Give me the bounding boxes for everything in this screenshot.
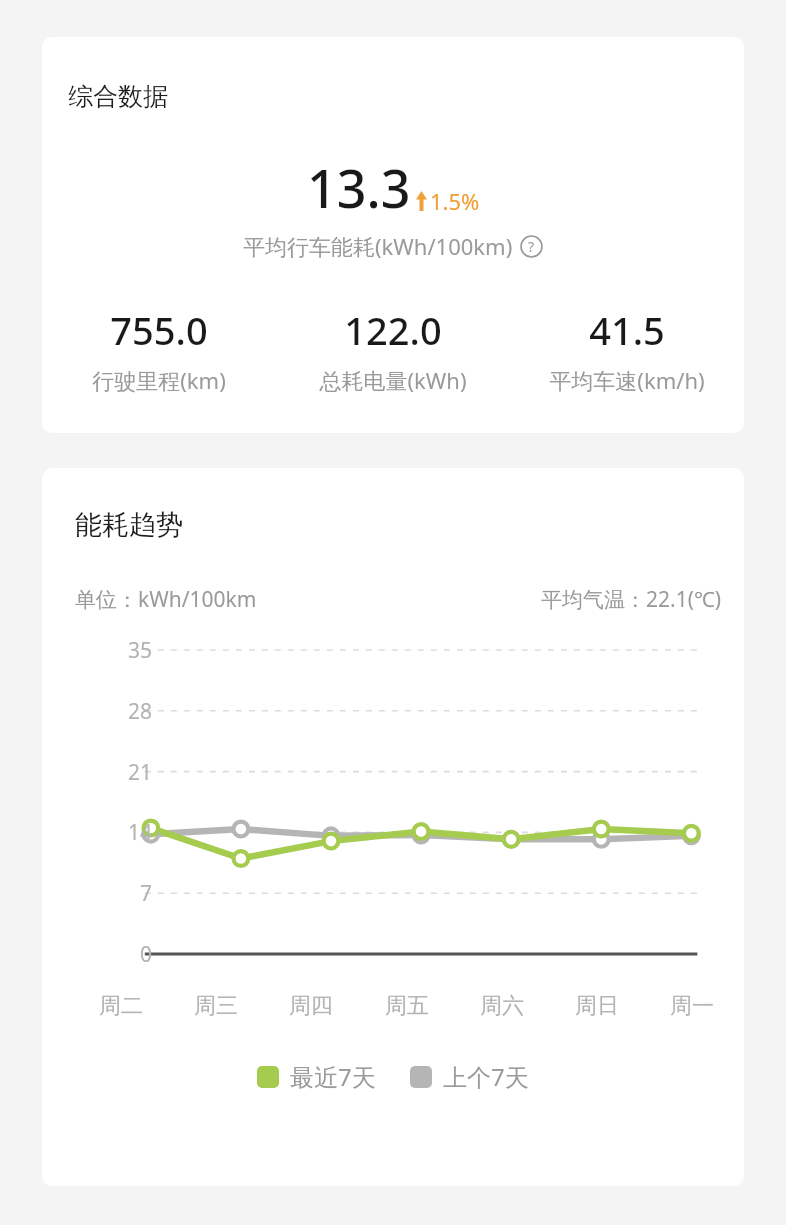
button[interactable]: 上个7天 xyxy=(410,1060,529,1093)
staticText: 总耗电量(kWh) xyxy=(319,365,467,395)
staticText: 1.5% xyxy=(430,186,480,216)
other: Help xyxy=(520,235,543,258)
staticText: 周五 xyxy=(385,992,429,1020)
button[interactable]: 122.0 xyxy=(276,304,510,395)
staticText: 周六 xyxy=(480,992,524,1020)
staticText: 最近7天 xyxy=(290,1060,376,1093)
staticText: 能耗趋势 xyxy=(75,508,183,542)
button[interactable]: 755.0 xyxy=(42,304,276,395)
staticText: 平均气温：22.1(℃) xyxy=(541,585,722,614)
staticText: 周四 xyxy=(289,992,333,1020)
staticText: ? xyxy=(528,237,535,256)
staticText: 行驶里程(km) xyxy=(92,365,226,395)
staticText: 周三 xyxy=(194,992,238,1020)
staticText: 14 xyxy=(127,818,152,847)
staticText: 单位：kWh/100km xyxy=(75,585,257,614)
staticText: 平均车速(km/h) xyxy=(549,365,705,395)
staticText: 综合数据 xyxy=(68,81,168,112)
button[interactable]: 平均行车能耗(kWh/100km) xyxy=(42,231,744,261)
staticText: 平均行车能耗(kWh/100km) xyxy=(243,231,513,261)
staticText: 13.3 xyxy=(307,152,411,223)
staticText: 周一 xyxy=(670,992,714,1020)
staticText: 28 xyxy=(127,697,152,726)
staticText: 755.0 xyxy=(110,304,208,356)
staticText: 上个7天 xyxy=(443,1060,529,1093)
staticText: 周二 xyxy=(99,992,143,1020)
button[interactable]: 41.5 xyxy=(510,304,744,395)
button[interactable]: 最近7天 xyxy=(257,1060,376,1093)
staticText: 0 xyxy=(139,940,152,969)
staticText: 7 xyxy=(139,879,152,908)
staticText: 122.0 xyxy=(344,304,442,356)
staticText: 21 xyxy=(127,758,152,787)
staticText: 35 xyxy=(127,636,152,665)
staticText: 周日 xyxy=(575,992,619,1020)
staticText: 41.5 xyxy=(589,304,665,356)
